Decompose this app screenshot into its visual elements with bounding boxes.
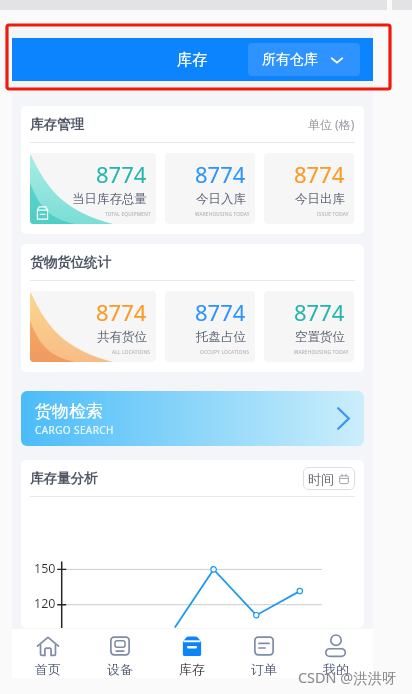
staticText: 共有货位 <box>97 329 147 345</box>
other: 库存 <box>181 635 203 657</box>
button[interactable]: 时间 <box>303 467 355 490</box>
button[interactable]: 8774 <box>165 153 255 224</box>
button[interactable]: 库存 <box>156 629 228 678</box>
staticText: 8774 <box>195 297 246 327</box>
button[interactable]: 8774 <box>30 153 156 224</box>
staticText: 120 <box>34 595 56 612</box>
button[interactable]: 所有仓库 <box>248 43 360 76</box>
button[interactable]: 8774 <box>30 291 156 362</box>
staticText: 货物货位统计 <box>30 254 111 271</box>
button[interactable]: 货物检索 <box>21 391 364 446</box>
staticText: 150 <box>34 560 56 577</box>
staticText: WAREHOUSING TODAY <box>294 349 349 355</box>
button[interactable]: 8774 <box>165 291 255 362</box>
staticText: 当日库存总量 <box>72 191 147 207</box>
staticText: 设备 <box>107 661 133 677</box>
staticText: 所有仓库 <box>262 51 318 69</box>
staticText: OCCUPY LOCATIONS <box>200 349 250 355</box>
staticText: WAREHOUSING TODAY <box>195 211 250 217</box>
staticText: 首页 <box>35 661 61 677</box>
staticText: 今日入库 <box>196 191 246 207</box>
staticText: 今日出库 <box>295 191 345 207</box>
other: 首页 <box>37 635 59 657</box>
staticText: 8774 <box>96 159 147 189</box>
other: 设备 <box>109 635 131 657</box>
staticText: 8774 <box>195 159 246 189</box>
staticText: CSDN @洪洪呀 <box>298 668 397 688</box>
button[interactable]: 8774 <box>264 153 354 224</box>
staticText: 库存 <box>177 50 208 70</box>
other: 订单 <box>253 635 275 657</box>
staticText: 库存管理 <box>30 116 84 133</box>
staticText: 订单 <box>251 661 277 677</box>
button[interactable]: 首页 <box>12 629 84 678</box>
staticText: CARGO SEARCH <box>35 423 114 437</box>
staticText: ISSUE TODAY <box>317 211 349 217</box>
staticText: 货物检索 <box>35 401 103 422</box>
staticText: ALL LOCATIONS <box>112 349 151 355</box>
other: 我的 <box>325 635 347 657</box>
staticText: 8774 <box>96 297 147 327</box>
staticText: 空置货位 <box>295 329 345 345</box>
staticText: 时间 <box>308 471 334 487</box>
staticText: 我的 <box>323 661 349 677</box>
button[interactable]: 8774 <box>264 291 354 362</box>
staticText: 单位 (格) <box>308 116 355 132</box>
staticText: 8774 <box>294 297 345 327</box>
staticText: 库存量分析 <box>30 470 98 487</box>
staticText: 8774 <box>294 159 345 189</box>
other: 进入货物检索 <box>337 407 350 430</box>
button[interactable]: 订单 <box>228 629 300 678</box>
button[interactable]: 我的 <box>300 629 372 678</box>
staticText: TOTAL EQUIPMENT <box>105 211 151 217</box>
button[interactable]: 设备 <box>84 629 156 678</box>
staticText: 托盘占位 <box>196 329 246 345</box>
staticText: 库存 <box>179 661 205 677</box>
